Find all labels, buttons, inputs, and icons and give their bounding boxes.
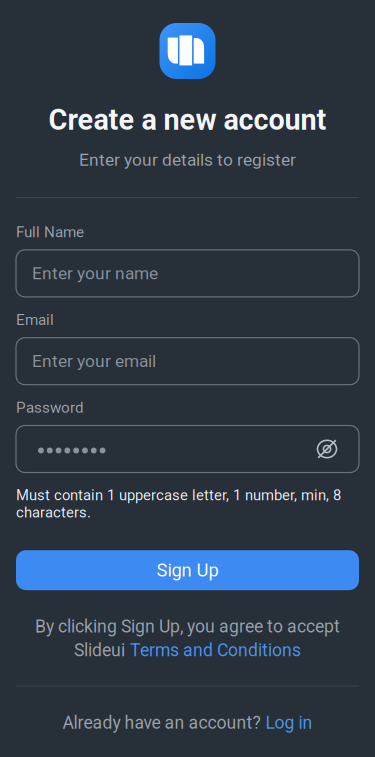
button[interactable]: Log in — [265, 712, 312, 733]
staticText: Password — [16, 399, 84, 416]
button[interactable]: Terms and Conditions — [130, 640, 301, 660]
staticText: Must contain 1 uppercase letter, 1 numbe… — [16, 486, 341, 521]
staticText: Slideui — [74, 640, 125, 660]
staticText: Enter your details to register — [79, 150, 296, 170]
staticText: Full Name — [16, 223, 84, 241]
staticText: By clicking Sign Up, you agree to accept — [35, 616, 340, 637]
staticText: Already have an account? — [62, 712, 260, 733]
staticText: Enter your email — [32, 351, 156, 371]
button[interactable]: Show password — [316, 438, 338, 460]
staticText: Enter your name — [32, 263, 158, 283]
button[interactable]: Sign Up — [16, 550, 359, 590]
staticText: Email — [16, 311, 54, 329]
staticText: Terms and Conditions — [130, 640, 301, 660]
staticText: Sign Up — [156, 559, 218, 581]
staticText: Log in — [265, 712, 312, 733]
staticText: Create a new account — [48, 103, 326, 137]
